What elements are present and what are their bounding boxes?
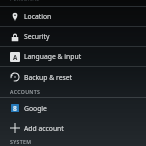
staticText: Location <box>24 12 52 21</box>
staticText: Language & input <box>24 52 82 61</box>
other: Backup and reset <box>10 72 20 82</box>
other: Add account <box>10 123 20 133</box>
staticText: 8 <box>13 104 17 112</box>
other: Security <box>10 32 20 42</box>
button[interactable]: Backup and reset <box>0 67 146 87</box>
staticText: PERSONAL <box>10 0 40 2</box>
button[interactable]: A <box>0 47 146 67</box>
staticText: Backup & reset <box>24 73 73 82</box>
staticText: Add account <box>24 124 64 133</box>
staticText: ACCOUNTS <box>10 88 41 95</box>
other: Location <box>10 12 20 22</box>
staticText: Security <box>24 32 50 41</box>
staticText: A <box>13 53 18 61</box>
button[interactable]: Location <box>0 7 146 27</box>
staticText: SYSTEM <box>10 138 32 145</box>
button[interactable]: 8 <box>0 98 146 118</box>
button[interactable]: Security <box>0 27 146 47</box>
staticText: Google <box>24 104 47 113</box>
button[interactable]: Add account <box>0 118 146 138</box>
